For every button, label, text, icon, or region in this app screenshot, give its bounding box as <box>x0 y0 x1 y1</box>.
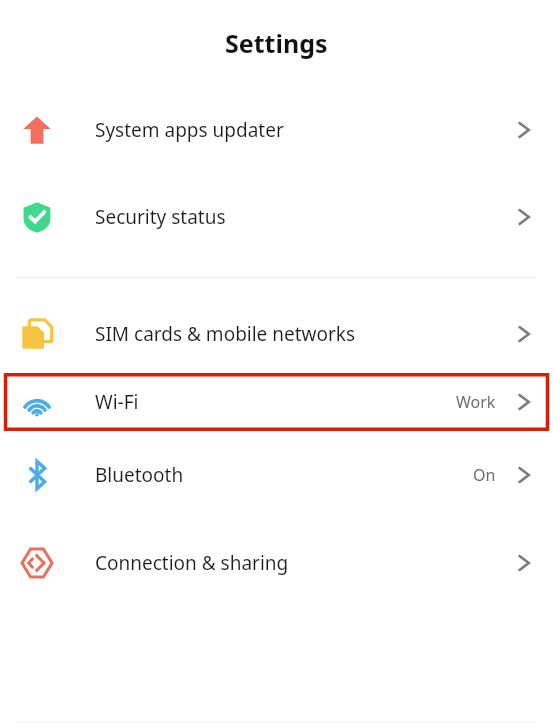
staticText: Work <box>456 391 496 413</box>
staticText: System apps updater <box>95 117 516 143</box>
button[interactable]: System apps updater <box>0 86 553 173</box>
button[interactable]: Security status <box>0 173 553 260</box>
staticText: Bluetooth <box>95 462 473 488</box>
other: System apps updater <box>21 114 53 146</box>
button[interactable]: Connection and sharing <box>0 519 553 606</box>
other: Bluetooth <box>21 459 53 491</box>
other: Security status <box>21 201 53 233</box>
staticText: Connection & sharing <box>95 550 516 576</box>
other: Wi-Fi <box>21 386 53 418</box>
staticText: SIM cards & mobile networks <box>95 321 516 347</box>
button[interactable]: Wi-Fi <box>0 373 553 431</box>
other: SIM cards and mobile networks <box>21 318 53 350</box>
staticText: Security status <box>95 204 516 230</box>
button[interactable]: SIM cards and mobile networks <box>0 295 553 373</box>
button[interactable]: Bluetooth <box>0 431 553 519</box>
staticText: On <box>473 464 496 486</box>
staticText: Settings <box>225 26 328 60</box>
staticText: Wi-Fi <box>95 389 456 415</box>
other: Connection and sharing <box>21 547 53 579</box>
